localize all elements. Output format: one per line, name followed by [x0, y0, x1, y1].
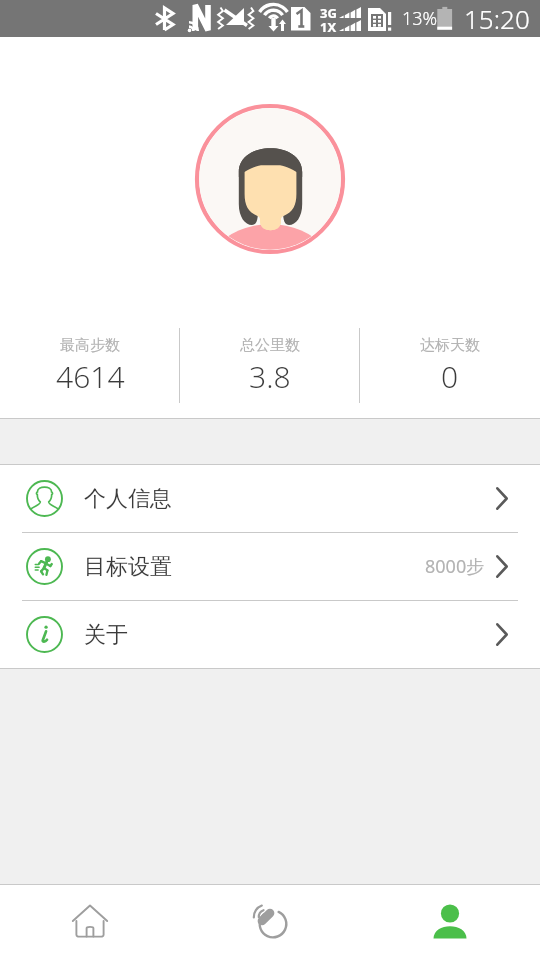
staticText: 达标天数 [420, 336, 480, 355]
button[interactable]: Home [0, 884, 180, 960]
staticText: 关于 [84, 621, 128, 649]
button[interactable]: Shake [180, 884, 360, 960]
staticText: 15:20 [464, 1, 530, 36]
staticText: 13% [402, 6, 438, 31]
staticText: 目标设置 [84, 553, 172, 581]
staticText: 4614 [56, 356, 125, 397]
staticText: 3G [320, 4, 337, 22]
staticText: 总公里数 [240, 336, 300, 355]
button[interactable]: 目标设置 [0, 533, 540, 600]
button[interactable]: Profile [360, 884, 540, 960]
staticText: 个人信息 [84, 485, 172, 513]
button[interactable]: 关于 [0, 601, 540, 668]
staticText: 3.8 [249, 356, 291, 397]
staticText: 最高步数 [60, 336, 120, 355]
button[interactable]: 个人信息 [0, 465, 540, 532]
staticText: 0 [441, 356, 459, 397]
staticText: 8000步 [425, 554, 485, 579]
staticText: 1X [320, 18, 337, 36]
